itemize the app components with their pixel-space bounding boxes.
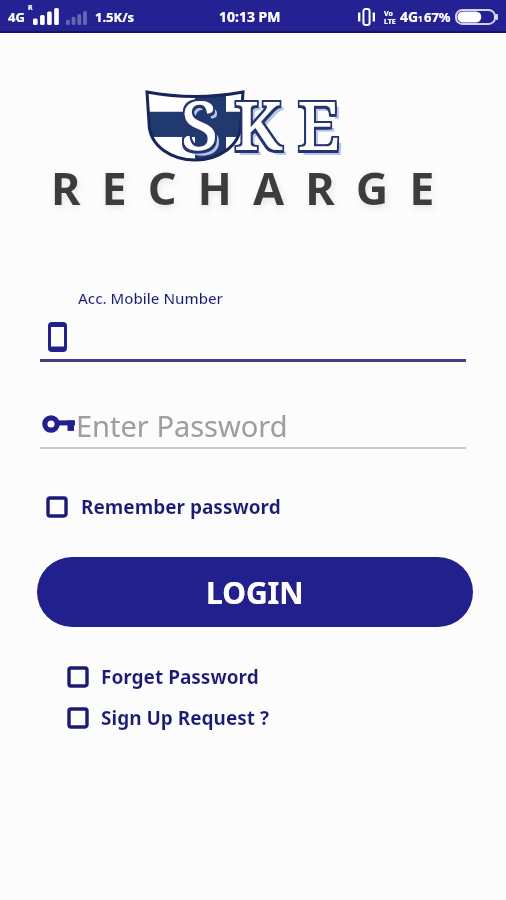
staticText: SKE — [183, 76, 358, 167]
staticText: SKE — [179, 76, 354, 167]
staticText: Enter Password — [76, 406, 288, 445]
staticText: SKE — [183, 81, 358, 172]
button[interactable] — [40, 310, 466, 362]
staticText: SKE — [181, 78, 356, 169]
staticText: Sign Up Request ? — [101, 705, 270, 731]
staticText: SKE — [183, 78, 358, 169]
staticText: Acc. Mobile Number — [78, 288, 223, 308]
button[interactable]: Sign Up Request ? — [67, 705, 270, 731]
staticText: LOGIN — [206, 572, 304, 613]
staticText: 1 — [418, 13, 423, 24]
staticText: SKE — [179, 81, 354, 172]
staticText: Remember password — [81, 494, 281, 520]
staticText: 67% — [424, 8, 451, 26]
staticText: 4G — [400, 7, 419, 26]
staticText: 10:13 PM — [219, 7, 281, 26]
staticText: SKE — [179, 78, 354, 169]
button[interactable]: Forget Password — [67, 664, 259, 690]
staticText: 1.5K/s — [95, 8, 135, 26]
staticText: Forget Password — [101, 664, 259, 690]
staticText: SKE — [181, 76, 356, 167]
staticText: RECHARGE — [51, 157, 456, 218]
staticText: SKE — [185, 83, 360, 174]
staticText: SKE — [181, 81, 356, 172]
button[interactable]: Remember password — [46, 494, 281, 520]
staticText: 4G — [8, 8, 25, 26]
staticText: Vo LTE — [384, 9, 396, 26]
button[interactable]: LOGIN — [37, 557, 473, 627]
staticText: R — [28, 3, 33, 13]
button[interactable] — [40, 402, 466, 449]
